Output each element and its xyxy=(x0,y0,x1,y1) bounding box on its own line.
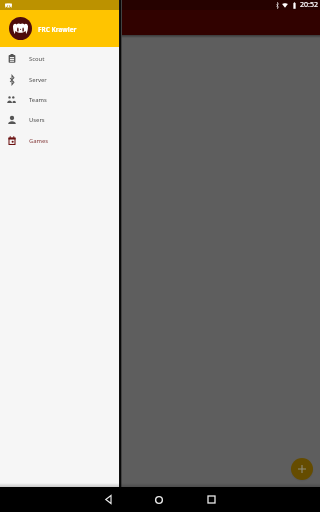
button[interactable]: Scout xyxy=(0,48,119,69)
button[interactable]: Back xyxy=(94,487,122,512)
button[interactable]: Games xyxy=(0,130,119,151)
button[interactable]: Home xyxy=(145,487,173,512)
staticText: Server xyxy=(29,76,47,84)
staticText: 20:52 xyxy=(300,0,318,10)
staticText: Teams xyxy=(29,96,47,104)
button[interactable]: Teams xyxy=(0,89,119,110)
button[interactable]: Add xyxy=(291,458,313,480)
button[interactable]: Server xyxy=(0,69,119,90)
button[interactable]: Recents xyxy=(197,487,225,512)
button[interactable]: Users xyxy=(0,109,119,130)
staticText: FRC Krawler xyxy=(38,25,77,34)
staticText: Scout xyxy=(29,55,45,63)
staticText: Games xyxy=(29,137,49,145)
staticText: Users xyxy=(29,116,45,124)
